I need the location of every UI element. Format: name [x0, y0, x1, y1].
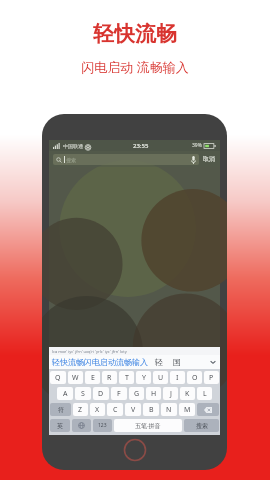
- button[interactable]: 轻: [155, 357, 163, 367]
- button[interactable]: N: [161, 403, 177, 416]
- button[interactable]: 国: [173, 357, 181, 367]
- staticText: F: [117, 389, 121, 399]
- button[interactable]: 123: [93, 419, 112, 432]
- button[interactable]: 搜索: [53, 154, 199, 165]
- button[interactable]: 取消: [202, 155, 216, 163]
- button[interactable]: Y: [136, 371, 151, 384]
- staticText: 英: [57, 422, 63, 430]
- button[interactable]: C: [107, 403, 123, 416]
- button[interactable]: L: [197, 387, 212, 400]
- button[interactable]: Z: [73, 403, 88, 416]
- staticText: L: [203, 389, 207, 399]
- button[interactable]: R: [102, 371, 117, 384]
- button[interactable]: Expand candidates: [209, 358, 217, 366]
- staticText: 搜索: [66, 157, 76, 163]
- staticText: lca mxe' iyc' jfrn' uxq'ri 'yrlc' iyc' j…: [52, 349, 127, 354]
- staticText: E: [91, 373, 95, 383]
- staticText: O: [192, 373, 198, 383]
- button[interactable]: X: [90, 403, 105, 416]
- staticText: 23:55: [133, 142, 149, 150]
- button[interactable]: 英: [50, 419, 70, 432]
- button[interactable]: 五笔·拼音: [114, 419, 182, 432]
- button[interactable]: T: [119, 371, 134, 384]
- staticText: 中国联通: [63, 143, 83, 149]
- staticText: R: [107, 373, 112, 383]
- staticText: X: [95, 405, 100, 415]
- staticText: 取消: [203, 155, 215, 163]
- button[interactable]: 轻快流畅闪电启动流畅输入: [52, 357, 148, 367]
- staticText: Y: [142, 373, 146, 383]
- staticText: D: [98, 389, 104, 399]
- staticText: A: [63, 389, 68, 399]
- staticText: 闪电启动 流畅输入: [81, 58, 189, 76]
- button[interactable]: 搜索: [184, 419, 219, 432]
- button[interactable]: S: [75, 387, 91, 400]
- staticText: 五笔·拼音: [135, 422, 161, 430]
- staticText: I: [176, 373, 179, 383]
- staticText: Q: [55, 373, 61, 383]
- staticText: 符: [58, 406, 64, 414]
- staticText: H: [151, 389, 157, 399]
- button[interactable]: Change keyboard: [72, 419, 91, 432]
- button[interactable]: B: [143, 403, 159, 416]
- button[interactable]: G: [129, 387, 144, 400]
- other: Home: [123, 438, 147, 462]
- other: Voice input: [191, 156, 196, 164]
- button[interactable]: A: [57, 387, 73, 400]
- staticText: K: [185, 389, 190, 399]
- button[interactable]: K: [180, 387, 195, 400]
- button[interactable]: O: [187, 371, 202, 384]
- staticText: C: [113, 405, 118, 415]
- button[interactable]: P: [204, 371, 219, 384]
- button[interactable]: V: [125, 403, 141, 416]
- staticText: 搜索: [196, 422, 208, 430]
- staticText: W: [72, 373, 79, 383]
- button[interactable]: F: [111, 387, 127, 400]
- staticText: 轻快流畅闪电启动流畅输入: [52, 357, 148, 367]
- staticText: S: [81, 389, 85, 399]
- staticText: 轻: [155, 357, 163, 367]
- button[interactable]: Backspace: [197, 403, 219, 416]
- staticText: J: [170, 389, 172, 399]
- button[interactable]: H: [146, 387, 161, 400]
- staticText: M: [184, 405, 191, 415]
- staticText: T: [125, 373, 129, 383]
- staticText: G: [134, 389, 140, 399]
- button[interactable]: W: [68, 371, 83, 384]
- button[interactable]: E: [85, 371, 100, 384]
- staticText: Z: [78, 405, 83, 415]
- staticText: B: [149, 405, 154, 415]
- button[interactable]: U: [153, 371, 168, 384]
- staticText: 123: [98, 422, 107, 429]
- button[interactable]: J: [163, 387, 178, 400]
- staticText: 39%: [192, 142, 202, 149]
- staticText: P: [209, 373, 214, 383]
- button[interactable]: Q: [50, 371, 66, 384]
- button[interactable]: D: [93, 387, 109, 400]
- staticText: U: [158, 373, 164, 383]
- staticText: N: [166, 405, 172, 415]
- button[interactable]: M: [179, 403, 195, 416]
- button[interactable]: 符: [50, 403, 71, 416]
- staticText: 轻快流畅: [93, 21, 177, 47]
- staticText: V: [131, 405, 136, 415]
- button[interactable]: I: [170, 371, 185, 384]
- staticText: 国: [173, 357, 181, 367]
